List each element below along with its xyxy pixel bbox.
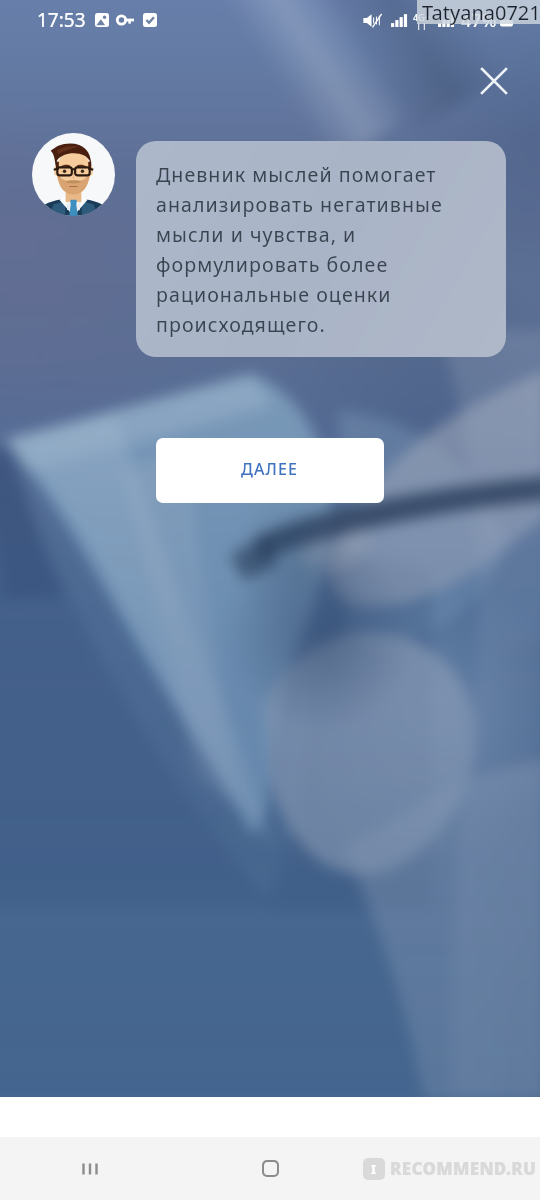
staticText: 17:53 xyxy=(37,7,86,33)
button[interactable]: Recents xyxy=(0,1137,180,1200)
button[interactable]: ДАЛЕЕ xyxy=(156,438,384,503)
button[interactable]: Close xyxy=(470,57,518,105)
staticText: RECOMMEND.RU xyxy=(390,1157,537,1180)
staticText: I xyxy=(371,1160,377,1178)
staticText: Tatyana0721 xyxy=(422,0,540,26)
button[interactable]: Home xyxy=(180,1137,360,1200)
staticText: 47% xyxy=(461,8,497,33)
staticText: Дневник мыслей помогает анализировать не… xyxy=(156,161,443,337)
button[interactable]: Back xyxy=(360,1137,540,1200)
staticText: ДАЛЕЕ xyxy=(241,458,299,480)
staticText: 4G+ xyxy=(413,11,430,23)
